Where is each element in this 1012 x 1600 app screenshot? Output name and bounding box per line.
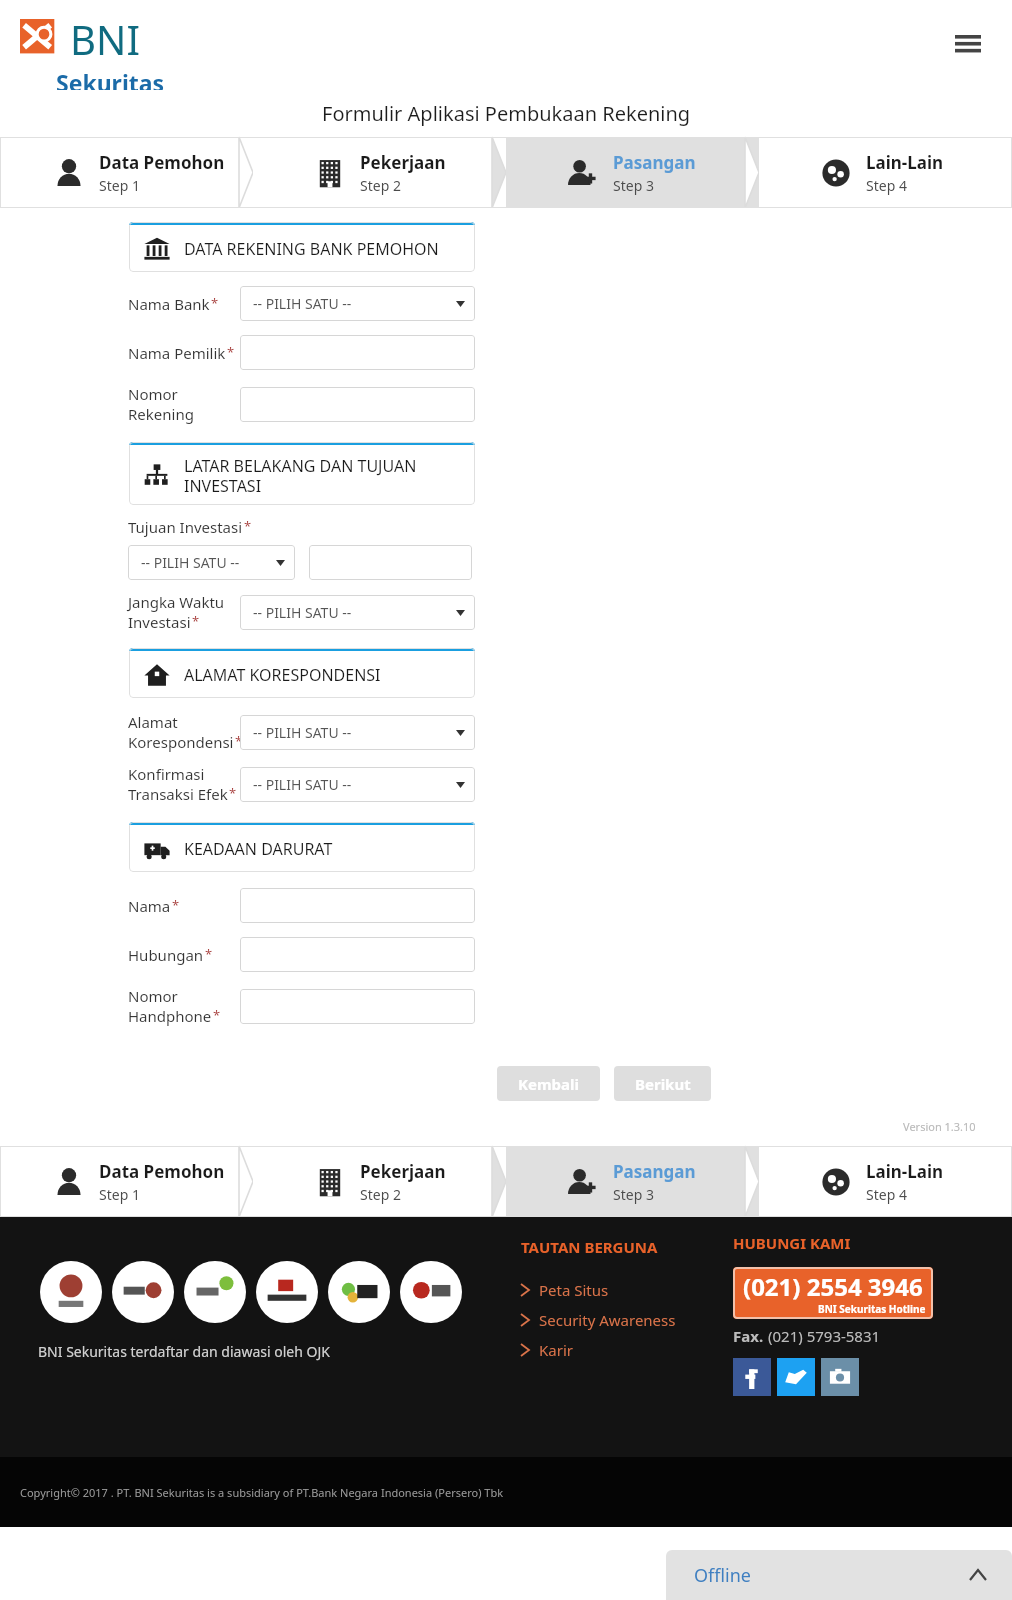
- button[interactable]: [240, 888, 475, 923]
- staticText: Data Pemohon: [99, 1160, 225, 1183]
- button[interactable]: [240, 335, 475, 370]
- staticText: Kembali: [518, 1074, 579, 1094]
- staticText: Offline: [694, 1563, 752, 1588]
- button[interactable]: [40, 1261, 102, 1323]
- button[interactable]: [240, 387, 475, 422]
- staticText: Step 3: [613, 176, 654, 195]
- staticText: BNI: [70, 12, 140, 66]
- button[interactable]: -- PILIH SATU --: [240, 286, 475, 321]
- staticText: *: [227, 343, 235, 361]
- button[interactable]: KEADAAN DARURAT: [129, 822, 475, 872]
- button[interactable]: LATAR BELAKANG DAN TUJUAN INVESTASI: [129, 442, 475, 505]
- staticText: *: [211, 294, 219, 312]
- staticText: -- PILIH SATU --: [253, 603, 352, 622]
- button[interactable]: Data Pemohon: [0, 1146, 253, 1217]
- staticText: Data Pemohon: [99, 151, 225, 174]
- staticText: *: [244, 517, 252, 535]
- button[interactable]: Pasangan: [506, 1146, 759, 1217]
- staticText: Nama Bank: [128, 294, 210, 314]
- button[interactable]: [112, 1261, 174, 1323]
- button[interactable]: Kembali: [497, 1066, 600, 1101]
- staticText: *: [213, 1006, 221, 1024]
- button[interactable]: Karir: [521, 1335, 573, 1365]
- staticText: LATAR BELAKANG DAN TUJUAN INVESTASI: [184, 455, 417, 496]
- staticText: *: [172, 896, 180, 914]
- button[interactable]: [240, 937, 475, 972]
- staticText: Berikut: [635, 1074, 691, 1094]
- button[interactable]: [240, 989, 475, 1024]
- staticText: Step 2: [360, 1185, 401, 1204]
- staticText: Formulir Aplikasi Pembukaan Rekening: [322, 100, 691, 127]
- staticText: Nama: [128, 896, 171, 916]
- staticText: -- PILIH SATU --: [253, 775, 352, 794]
- button[interactable]: [184, 1261, 246, 1323]
- button[interactable]: Security Awareness: [521, 1305, 676, 1335]
- button[interactable]: -- PILIH SATU --: [128, 545, 295, 580]
- button[interactable]: Lain-Lain: [759, 1146, 1012, 1217]
- staticText: Pasangan: [613, 151, 696, 174]
- staticText: DATA REKENING BANK PEMOHON: [184, 238, 439, 260]
- button[interactable]: Berikut: [614, 1066, 711, 1101]
- button[interactable]: (021) 2554 3946: [733, 1267, 933, 1319]
- staticText: BNI Sekuritas Hotline: [818, 1302, 926, 1316]
- staticText: BNI Sekuritas terdaftar dan diawasi oleh…: [38, 1342, 330, 1361]
- button[interactable]: Facebook: [733, 1358, 771, 1396]
- staticText: *: [192, 612, 200, 630]
- staticText: Pekerjaan: [360, 151, 446, 174]
- staticText: Karir: [539, 1340, 573, 1360]
- staticText: Hubungan: [128, 945, 204, 965]
- staticText: HUBUNGI KAMI: [733, 1233, 851, 1253]
- staticText: Lain-Lain: [866, 151, 944, 174]
- staticText: Step 4: [866, 176, 907, 195]
- staticText: (021) 2554 3946: [743, 1270, 923, 1303]
- staticText: Step 1: [99, 1185, 140, 1204]
- staticText: Step 3: [613, 1185, 654, 1204]
- staticText: -- PILIH SATU --: [253, 723, 352, 742]
- staticText: (021) 5793-5831: [768, 1326, 881, 1346]
- button[interactable]: [400, 1261, 462, 1323]
- button[interactable]: Peta Situs: [521, 1275, 609, 1305]
- button[interactable]: -- PILIH SATU --: [240, 715, 475, 750]
- staticText: Nomor Rekening: [128, 384, 240, 424]
- staticText: Pekerjaan: [360, 1160, 446, 1183]
- staticText: Alamat: [128, 712, 178, 732]
- button[interactable]: Pekerjaan: [253, 1146, 506, 1217]
- staticText: Lain-Lain: [866, 1160, 944, 1183]
- staticText: Nomor: [128, 986, 178, 1006]
- staticText: Pasangan: [613, 1160, 696, 1183]
- staticText: Investasi: [128, 612, 191, 632]
- staticText: Security Awareness: [539, 1310, 676, 1330]
- staticText: Fax.: [733, 1326, 768, 1346]
- button[interactable]: Data Pemohon: [0, 137, 253, 208]
- staticText: *: [235, 732, 240, 750]
- staticText: Nama Pemilik: [128, 343, 226, 363]
- staticText: TAUTAN BERGUNA: [521, 1237, 658, 1257]
- button[interactable]: Pasangan: [506, 137, 759, 208]
- staticText: ALAMAT KORESPONDENSI: [184, 664, 381, 686]
- button[interactable]: [256, 1261, 318, 1323]
- button[interactable]: -- PILIH SATU --: [240, 767, 475, 802]
- button[interactable]: ALAMAT KORESPONDENSI: [129, 648, 475, 698]
- button[interactable]: DATA REKENING BANK PEMOHON: [129, 222, 475, 272]
- staticText: Konfirmasi: [128, 764, 205, 784]
- staticText: Version 1.3.10: [903, 1119, 976, 1134]
- staticText: KEADAAN DARURAT: [184, 838, 333, 860]
- button[interactable]: -- PILIH SATU --: [240, 595, 475, 630]
- button[interactable]: Pekerjaan: [253, 137, 506, 208]
- button[interactable]: Lain-Lain: [759, 137, 1012, 208]
- button[interactable]: Offline: [666, 1550, 1012, 1600]
- button[interactable]: Menu: [950, 26, 986, 62]
- button[interactable]: Twitter: [777, 1358, 815, 1396]
- staticText: *: [205, 945, 213, 963]
- staticText: Transaksi Efek: [128, 784, 228, 804]
- button[interactable]: [328, 1261, 390, 1323]
- button[interactable]: Instagram: [821, 1358, 859, 1396]
- staticText: -- PILIH SATU --: [253, 294, 352, 313]
- staticText: Tujuan Investasi: [128, 517, 243, 537]
- staticText: Step 1: [99, 176, 140, 195]
- staticText: Korespondensi: [128, 732, 234, 752]
- staticText: Jangka Waktu: [128, 592, 225, 612]
- button[interactable]: [309, 545, 472, 580]
- staticText: *: [229, 784, 237, 802]
- staticText: Step 4: [866, 1185, 907, 1204]
